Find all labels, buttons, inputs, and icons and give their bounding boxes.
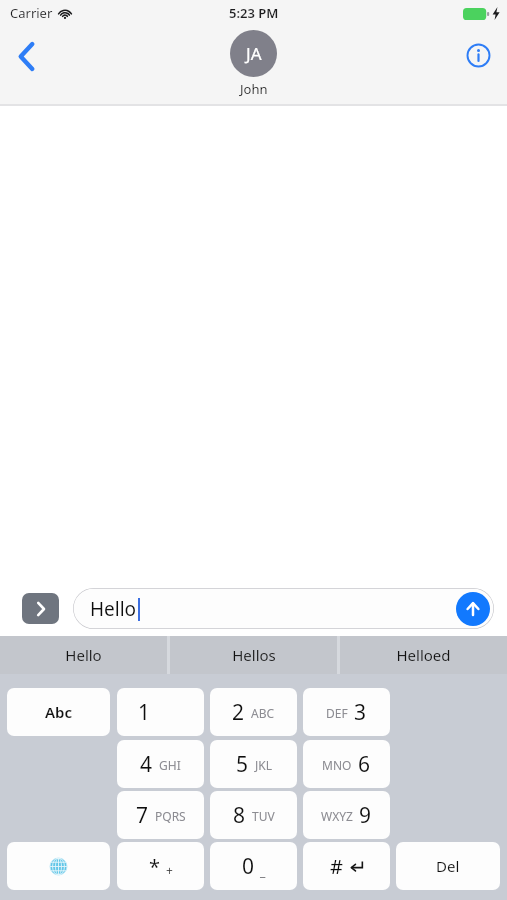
- staticText: Abc: [45, 702, 73, 722]
- staticText: Carrier: [10, 4, 53, 22]
- button[interactable]: Hello: [73, 588, 494, 629]
- button[interactable]: 7: [117, 791, 204, 839]
- staticText: DEF: [326, 705, 348, 721]
- button[interactable]: Hello: [0, 636, 167, 674]
- button[interactable]: 5: [210, 740, 297, 788]
- button[interactable]: 4: [117, 740, 204, 788]
- button[interactable]: Info: [456, 33, 500, 77]
- staticText: Hellos: [232, 645, 276, 665]
- button[interactable]: #: [303, 842, 390, 890]
- button[interactable]: Abc: [7, 688, 110, 736]
- staticText: Helloed: [396, 645, 451, 665]
- button[interactable]: Switch keyboard: [7, 842, 110, 890]
- staticText: GHI: [159, 757, 181, 773]
- staticText: ABC: [251, 705, 275, 721]
- staticText: PQRS: [155, 808, 186, 824]
- staticText: 0: [242, 852, 255, 881]
- staticText: Hello: [65, 645, 102, 665]
- staticText: 7: [136, 801, 149, 830]
- button[interactable]: 1: [117, 688, 204, 736]
- staticText: Hello: [90, 596, 137, 622]
- staticText: 3: [354, 698, 367, 727]
- staticText: 5: [236, 750, 249, 779]
- staticText: Del: [436, 856, 460, 876]
- staticText: WXYZ: [321, 808, 353, 824]
- staticText: 8: [233, 801, 246, 830]
- button[interactable]: JA: [230, 30, 277, 98]
- staticText: 2: [232, 698, 245, 727]
- button[interactable]: 2: [210, 688, 297, 736]
- staticText: 9: [359, 801, 372, 830]
- staticText: *: [149, 853, 161, 880]
- button[interactable]: DEF: [303, 688, 390, 736]
- button[interactable]: MNO: [303, 740, 390, 788]
- staticText: John: [240, 80, 268, 98]
- button[interactable]: 0: [210, 842, 297, 890]
- staticText: +: [166, 862, 173, 878]
- staticText: #: [330, 853, 343, 880]
- staticText: TUV: [252, 808, 275, 824]
- staticText: 4: [140, 750, 153, 779]
- button[interactable]: Hellos: [170, 636, 337, 674]
- button[interactable]: Helloed: [340, 636, 507, 674]
- button[interactable]: *: [117, 842, 204, 890]
- button[interactable]: Expand options: [22, 593, 59, 624]
- staticText: 5:23 PM: [229, 4, 279, 22]
- staticText: 6: [358, 750, 371, 779]
- staticText: JKL: [255, 757, 272, 773]
- staticText: _: [260, 863, 266, 879]
- button[interactable]: WXYZ: [303, 791, 390, 839]
- button[interactable]: Back: [2, 32, 50, 80]
- staticText: JA: [246, 42, 262, 65]
- button[interactable]: Del: [396, 842, 500, 890]
- staticText: MNO: [322, 757, 352, 773]
- staticText: 1: [138, 698, 151, 727]
- button[interactable]: 8: [210, 791, 297, 839]
- button[interactable]: Send: [456, 592, 490, 626]
